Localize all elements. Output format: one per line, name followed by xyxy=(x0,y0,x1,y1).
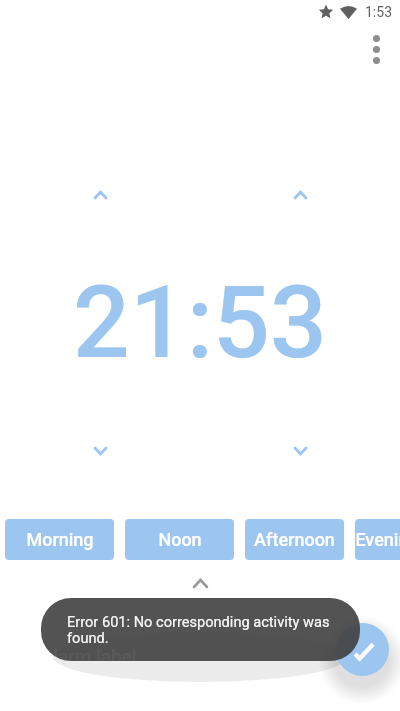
staticText: Alarm label xyxy=(41,645,137,667)
button[interactable]: Morning xyxy=(5,519,114,560)
staticText: Afternoon xyxy=(254,529,335,550)
button[interactable]: Decrease minute xyxy=(284,435,316,467)
staticText: 1:53 xyxy=(365,4,392,20)
button[interactable]: Decrease hour xyxy=(84,435,116,467)
staticText: 21:53 xyxy=(73,264,327,381)
button[interactable]: Increase hour xyxy=(84,179,116,211)
button[interactable]: Increase minute xyxy=(284,179,316,211)
staticText: Evening xyxy=(355,529,400,550)
staticText: Morning xyxy=(26,529,94,550)
staticText: Error 601: No corresponding activity was… xyxy=(67,613,349,646)
button[interactable]: Noon xyxy=(125,519,234,560)
button[interactable]: More options xyxy=(356,29,397,70)
staticText: Noon xyxy=(158,529,202,550)
button[interactable]: Done xyxy=(336,623,389,676)
button[interactable]: Expand xyxy=(184,572,216,594)
button[interactable]: Evening xyxy=(355,519,400,560)
button[interactable]: Afternoon xyxy=(245,519,344,560)
